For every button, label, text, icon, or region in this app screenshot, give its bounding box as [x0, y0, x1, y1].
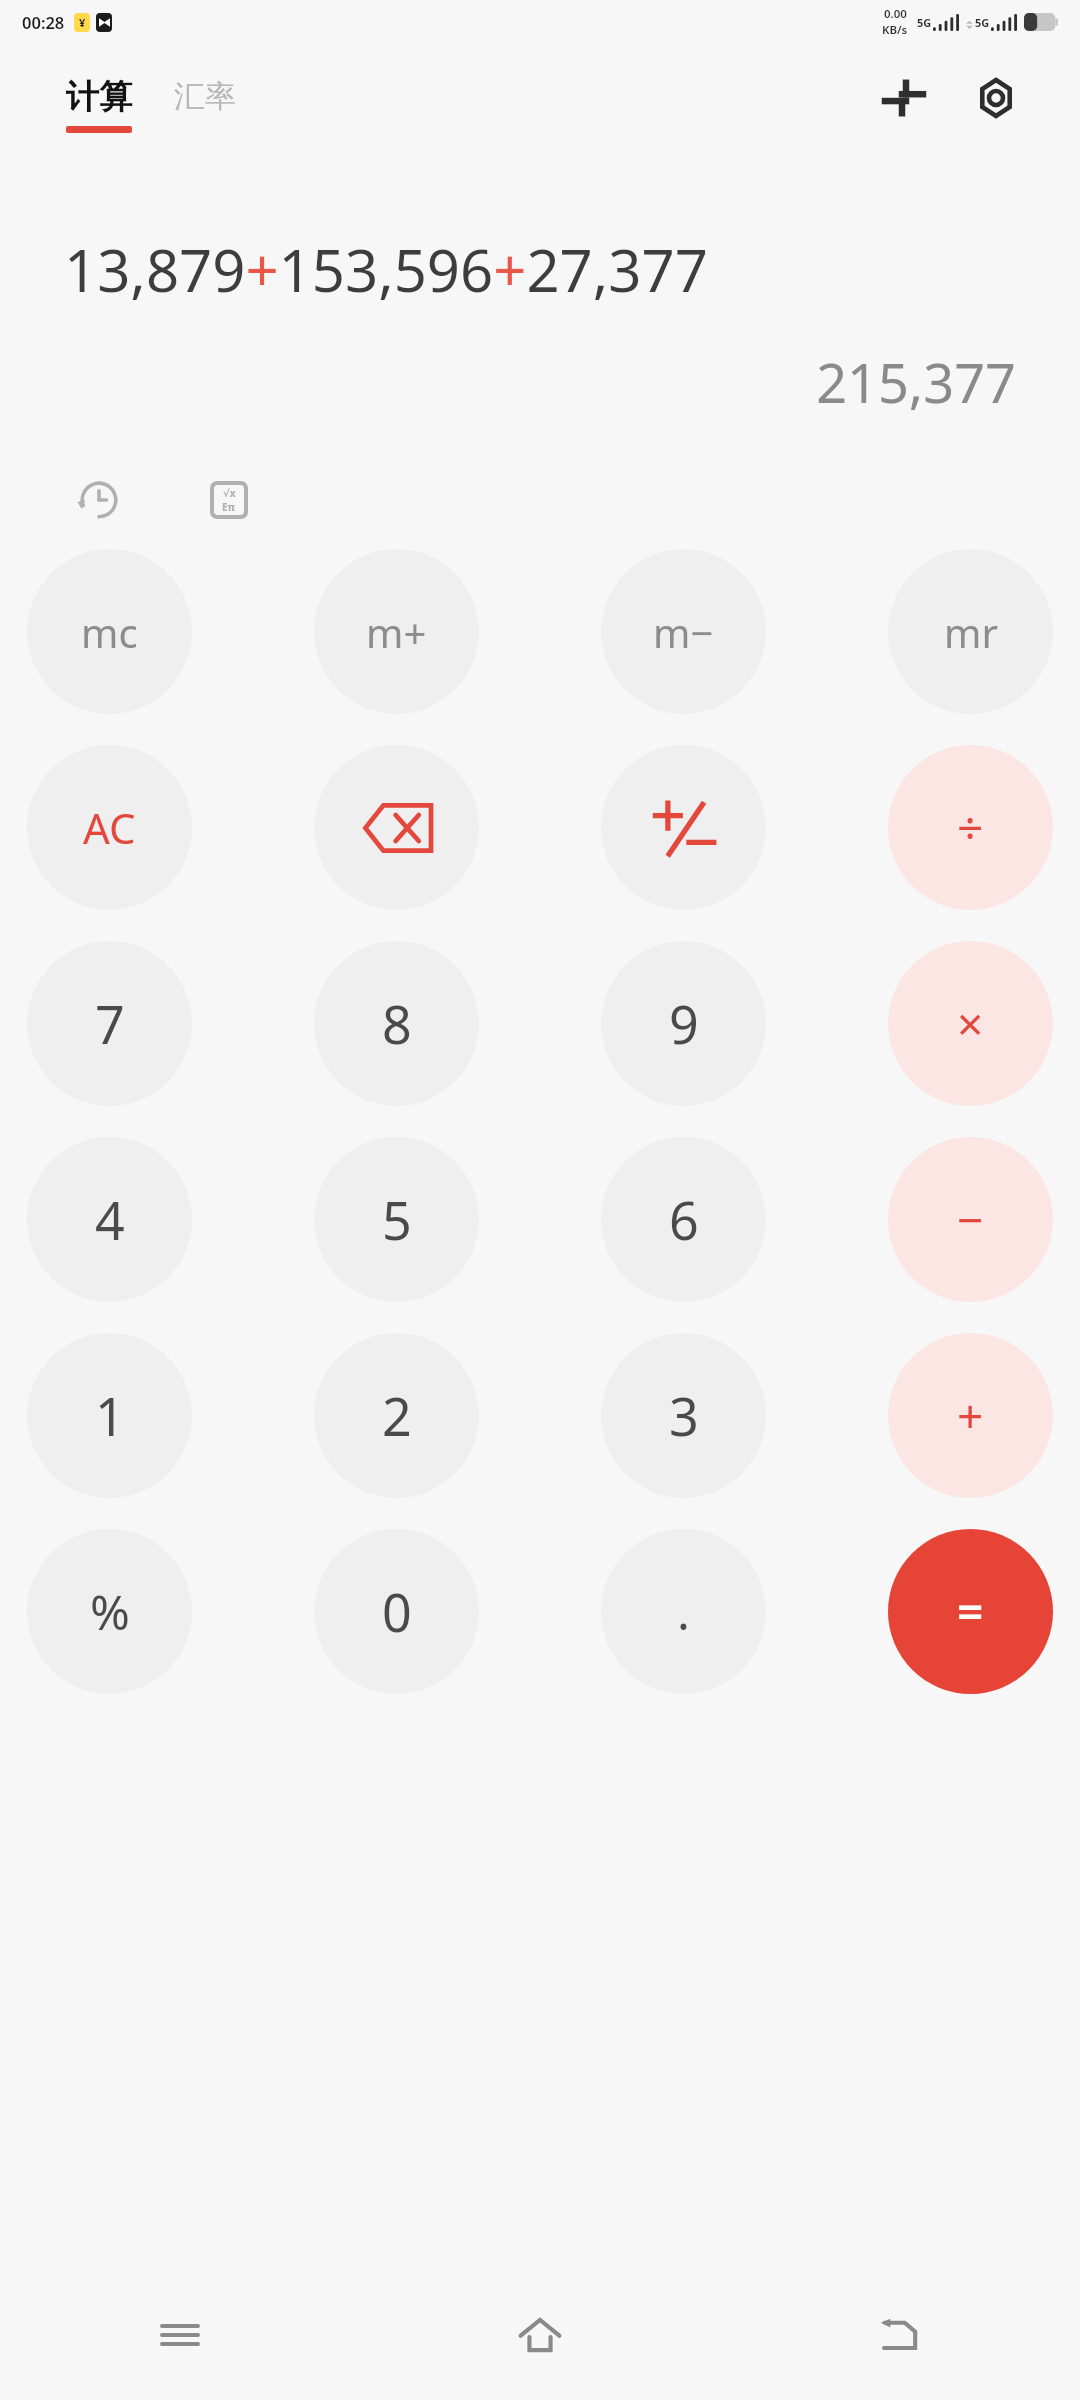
staticText: =: [957, 1580, 984, 1643]
button[interactable]: Recents: [0, 2270, 360, 2400]
staticText: 0: [382, 1576, 412, 1647]
button[interactable]: Home: [360, 2270, 720, 2400]
staticText: %: [90, 1579, 130, 1644]
staticText: 计算: [66, 76, 132, 118]
button[interactable]: 1: [27, 1333, 192, 1498]
button[interactable]: ×: [888, 941, 1053, 1106]
staticText: √x: [223, 486, 236, 500]
button[interactable]: 汇率: [174, 77, 236, 116]
staticText: m+: [366, 605, 427, 659]
staticText: −: [957, 1188, 984, 1251]
staticText: +: [957, 1384, 984, 1447]
button[interactable]: mr: [888, 549, 1053, 714]
staticText: 5: [382, 1184, 412, 1255]
button[interactable]: −: [888, 1137, 1053, 1302]
staticText: AC: [83, 799, 136, 856]
button[interactable]: +: [888, 1333, 1053, 1498]
button[interactable]: m−: [601, 549, 766, 714]
button[interactable]: Collapse: [872, 66, 936, 130]
staticText: mc: [81, 605, 138, 659]
button[interactable]: =: [888, 1529, 1053, 1694]
button[interactable]: 9: [601, 941, 766, 1106]
staticText: 13,879+153,596+27,377: [64, 230, 1016, 309]
staticText: 00:28: [22, 11, 65, 33]
staticText: ×: [957, 992, 984, 1055]
staticText: 8: [382, 988, 412, 1059]
staticText: 4: [95, 1184, 125, 1255]
button[interactable]: Settings: [964, 66, 1028, 130]
staticText: 7: [95, 988, 125, 1059]
staticText: 5G: [975, 15, 990, 30]
button[interactable]: 8: [314, 941, 479, 1106]
staticText: 6: [669, 1184, 699, 1255]
button[interactable]: AC: [27, 745, 192, 910]
staticText: 5G: [917, 15, 932, 30]
staticText: m−: [653, 605, 714, 659]
button[interactable]: Plus minus: [601, 745, 766, 910]
button[interactable]: 5: [314, 1137, 479, 1302]
staticText: 2: [382, 1380, 412, 1451]
staticText: 汇率: [174, 77, 236, 116]
button[interactable]: Scientific: [200, 471, 258, 529]
staticText: KB/s: [882, 22, 908, 38]
button[interactable]: %: [27, 1529, 192, 1694]
button[interactable]: 2: [314, 1333, 479, 1498]
staticText: 9: [669, 988, 699, 1059]
staticText: ¥: [79, 15, 86, 30]
button[interactable]: 0: [314, 1529, 479, 1694]
staticText: 3: [669, 1380, 699, 1451]
staticText: ÷: [957, 796, 984, 859]
staticText: .: [677, 1579, 690, 1644]
staticText: Eπ: [222, 500, 236, 514]
button[interactable]: History: [70, 471, 128, 529]
staticText: 215,377: [64, 345, 1016, 419]
button[interactable]: 4: [27, 1137, 192, 1302]
button[interactable]: ÷: [888, 745, 1053, 910]
staticText: mr: [944, 605, 998, 659]
staticText: 0.00: [884, 6, 907, 22]
button[interactable]: 6: [601, 1137, 766, 1302]
staticText: 1: [95, 1380, 125, 1451]
button[interactable]: mc: [27, 549, 192, 714]
button[interactable]: Back: [720, 2270, 1080, 2400]
button[interactable]: Backspace: [314, 745, 479, 910]
button[interactable]: 7: [27, 941, 192, 1106]
button[interactable]: 3: [601, 1333, 766, 1498]
button[interactable]: .: [601, 1529, 766, 1694]
button[interactable]: m+: [314, 549, 479, 714]
